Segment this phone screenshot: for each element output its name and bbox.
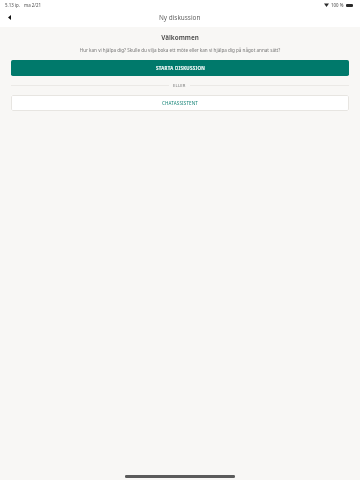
staticText: CHATASSISTENT: [162, 100, 199, 106]
staticText: Ny diskussion: [159, 13, 201, 22]
staticText: ELLER: [173, 83, 186, 89]
button[interactable]: Back: [2, 10, 16, 24]
staticText: STARTA DISKUSSION: [156, 65, 205, 71]
staticText: ma 2/21: [24, 2, 42, 8]
button[interactable]: STARTA DISKUSSION: [11, 60, 349, 76]
staticText: 100 %: [331, 2, 344, 8]
staticText: Välkommen: [11, 33, 349, 42]
button[interactable]: CHATASSISTENT: [11, 95, 349, 111]
staticText: Hur kan vi hjälpa dig? Skulle du vilja b…: [11, 47, 349, 53]
staticText: 5.13 ip.: [5, 2, 20, 8]
